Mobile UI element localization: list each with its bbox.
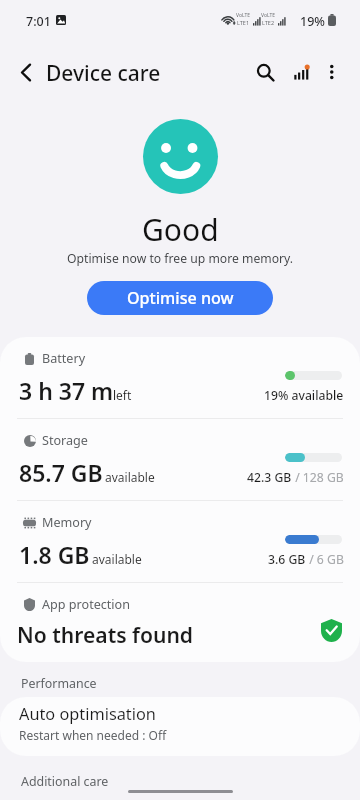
- button[interactable]: Optimise now: [87, 281, 273, 315]
- staticText: Battery: [42, 350, 86, 367]
- staticText: / 6 GB: [306, 551, 344, 568]
- staticText: 1.8 GB: [19, 539, 90, 570]
- staticText: left: [113, 387, 132, 403]
- button[interactable]: Usage statistics: [285, 41, 317, 103]
- staticText: Additional care: [21, 773, 109, 790]
- button[interactable]: More options: [312, 41, 352, 103]
- staticText: Memory: [42, 514, 92, 531]
- staticText: 19% available: [264, 387, 344, 404]
- staticText: 85.7 GB: [19, 457, 103, 488]
- staticText: 19%: [300, 13, 325, 30]
- staticText: Restart when needed : Off: [19, 727, 167, 743]
- staticText: No threats found: [17, 620, 194, 649]
- button[interactable]: Search: [243, 41, 287, 103]
- staticText: 7:01: [26, 13, 51, 30]
- staticText: Optimise now: [127, 287, 234, 309]
- staticText: VoLTE: [261, 12, 276, 19]
- staticText: 42.3 GB: [247, 469, 292, 486]
- staticText: / 128 GB: [292, 469, 344, 486]
- staticText: Performance: [21, 675, 97, 692]
- button[interactable]: Memory: [0, 501, 360, 582]
- staticText: VoLTE: [236, 12, 251, 19]
- staticText: 3.6 GB: [268, 551, 306, 568]
- staticText: Device care: [46, 59, 161, 88]
- staticText: Optimise now to free up more memory.: [67, 250, 294, 267]
- button[interactable]: Storage: [0, 419, 360, 500]
- button[interactable]: App protection: [0, 583, 360, 662]
- staticText: available: [92, 551, 142, 567]
- staticText: Storage: [42, 432, 88, 449]
- staticText: available: [105, 469, 155, 485]
- staticText: App protection: [42, 596, 131, 613]
- staticText: Auto optimisation: [19, 703, 156, 725]
- staticText: 3 h 37 m: [19, 375, 114, 406]
- button[interactable]: Back: [4, 41, 48, 103]
- button[interactable]: Battery: [0, 337, 360, 418]
- staticText: Good: [142, 209, 219, 250]
- button[interactable]: Auto optimisation: [0, 697, 360, 756]
- staticText: LTE2: [262, 19, 275, 26]
- staticText: LTE1: [237, 19, 250, 26]
